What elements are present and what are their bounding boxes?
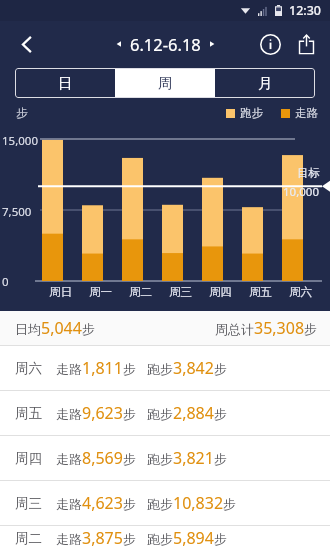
button[interactable]: 周三 (0, 481, 330, 525)
button[interactable]: 周六 (0, 346, 330, 390)
button[interactable]: Back (8, 25, 46, 63)
staticText: 走路3,875步 (56, 527, 136, 549)
staticText: 15,000 (2, 133, 38, 149)
button[interactable]: 6.12-6.18 (115, 33, 216, 55)
staticText: 周三 (15, 495, 42, 512)
staticText: 跑步3,821步 (147, 447, 227, 469)
staticText: 10,000 (283, 184, 319, 200)
staticText: 走路4,623步 (56, 492, 136, 514)
staticText: 周四 (15, 450, 42, 467)
button[interactable]: 周五 (0, 391, 330, 435)
staticText: 周二 (15, 530, 42, 547)
staticText: 跑步2,884步 (147, 402, 227, 424)
staticText: 跑步5,894步 (147, 527, 227, 549)
staticText: 0 (2, 274, 9, 290)
staticText: 跑步3,842步 (147, 357, 227, 379)
staticText: 跑步 (240, 106, 263, 120)
staticText: 周三 (169, 285, 192, 299)
staticText: 走路1,811步 (56, 357, 136, 379)
staticText: 12:30 (289, 2, 322, 19)
staticText: 7,500 (2, 204, 32, 220)
staticText: 走路8,569步 (56, 447, 136, 469)
staticText: 周五 (15, 405, 42, 422)
staticText: 周总计35,308步 (215, 317, 318, 339)
button[interactable]: Info (252, 26, 288, 62)
button[interactable]: 日 (15, 68, 115, 98)
button[interactable]: Share (288, 26, 324, 62)
staticText: 周二 (129, 285, 152, 299)
staticText: 日均5,044步 (15, 317, 95, 339)
staticText: 周五 (249, 285, 272, 299)
staticText: 周一 (89, 285, 112, 299)
button[interactable]: 月 (215, 68, 315, 98)
staticText: 6.12-6.18 (130, 33, 201, 55)
staticText: 周 (158, 74, 173, 92)
staticText: 周日 (49, 285, 72, 299)
staticText: 周六 (289, 285, 312, 299)
button[interactable]: 周二 (0, 526, 330, 550)
staticText: 周六 (15, 360, 42, 377)
staticText: 步 (16, 106, 28, 120)
staticText: 月 (258, 74, 273, 92)
staticText: 走路 (295, 106, 318, 120)
button[interactable]: 周 (115, 68, 215, 98)
staticText: 周四 (209, 285, 232, 299)
staticText: 走路9,623步 (56, 402, 136, 424)
staticText: 跑步10,832步 (147, 492, 237, 514)
staticText: 日 (58, 74, 73, 92)
staticText: 目标 (297, 166, 320, 180)
button[interactable]: 周四 (0, 436, 330, 480)
